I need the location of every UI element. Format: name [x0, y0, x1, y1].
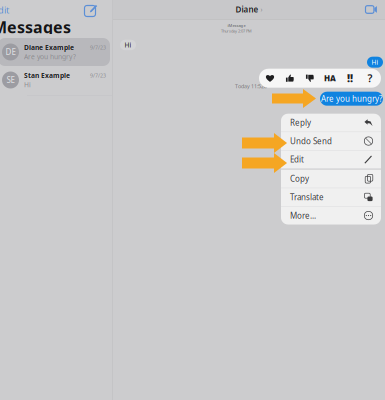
button[interactable]: Edit [281, 150, 381, 168]
button[interactable]: Diane [231, 2, 266, 17]
staticText: Are you hungry? [321, 93, 382, 104]
staticText: 9/7/23 [90, 72, 106, 79]
button[interactable]: More... [281, 207, 381, 224]
staticText: ? [367, 71, 372, 85]
button[interactable]: FaceTime [365, 5, 377, 14]
staticText: iMessage [227, 23, 245, 28]
button[interactable]: Reply [281, 114, 381, 132]
staticText: Copy [290, 173, 309, 184]
staticText: Edit [0, 4, 9, 16]
button[interactable]: Thumbs down [300, 69, 320, 87]
button[interactable]: Thumbs up [280, 69, 300, 87]
button[interactable]: Translate [281, 188, 381, 206]
button[interactable]: Copy [281, 170, 381, 188]
button[interactable]: Question mark [360, 69, 380, 87]
staticText: Hi [371, 58, 378, 67]
button[interactable]: Exclamation [340, 69, 360, 87]
staticText: Edit [290, 154, 304, 165]
staticText: › [260, 5, 262, 14]
staticText: Today 11:52a [235, 83, 267, 90]
staticText: DE [5, 47, 15, 57]
staticText: Translate [290, 192, 324, 202]
staticText: Messages [0, 16, 71, 38]
button[interactable]: New Message [83, 2, 99, 18]
staticText: More... [290, 210, 316, 221]
staticText: Thursday 2:07 PM [221, 28, 252, 34]
staticText: 9/7/23 [90, 44, 106, 51]
button[interactable]: DE [0, 38, 112, 66]
staticText: Are you hungry? [24, 52, 76, 61]
staticText: !! [347, 71, 353, 85]
staticText: Hi [24, 80, 31, 89]
button[interactable]: SE [0, 66, 112, 94]
button[interactable]: Heart [260, 69, 280, 87]
staticText: Diane [235, 4, 258, 15]
staticText: Hi [124, 40, 131, 49]
staticText: Stan Example [24, 71, 70, 80]
staticText: Undo Send [290, 136, 332, 146]
staticText: SE [6, 75, 14, 85]
button[interactable]: Undo Send [281, 132, 381, 150]
staticText: HA [324, 73, 336, 83]
staticText: Diane Example [24, 43, 74, 52]
button[interactable]: Haha [320, 69, 340, 87]
button[interactable]: Edit [0, 2, 9, 18]
staticText: Reply [290, 117, 311, 128]
